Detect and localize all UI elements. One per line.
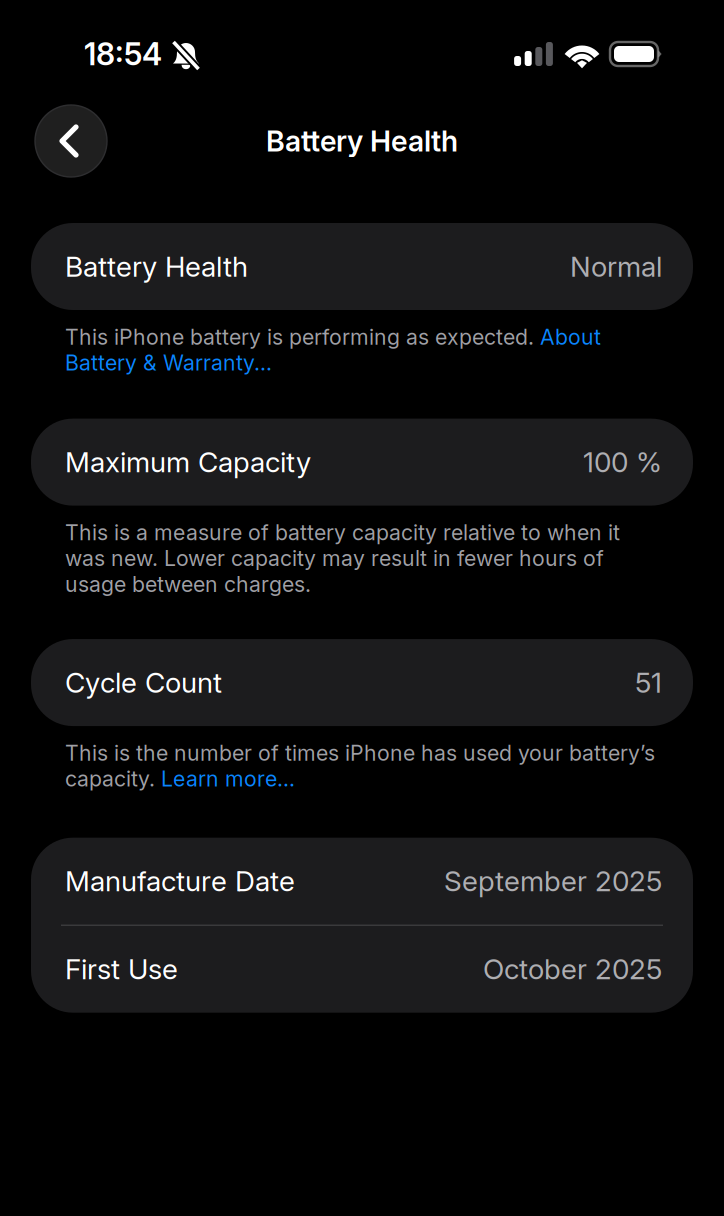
button[interactable]: Maximum Capacity — [31, 419, 693, 506]
staticText: Battery Health — [266, 124, 458, 158]
staticText: Manufacture Date — [65, 864, 295, 898]
staticText: 51 — [635, 666, 662, 699]
staticText: 100 % — [583, 445, 662, 479]
staticText: This is a measure of battery capacity re… — [65, 520, 620, 597]
button[interactable]: First Use — [31, 926, 693, 1013]
staticText: This is the number of times iPhone has u… — [65, 740, 655, 792]
staticText: 18:54 — [84, 35, 162, 72]
staticText: Battery Health — [65, 250, 248, 283]
button[interactable]: Cycle Count — [31, 639, 693, 726]
staticText: Maximum Capacity — [65, 445, 311, 479]
button[interactable]: Battery Health — [31, 223, 693, 310]
staticText: First Use — [65, 952, 178, 986]
staticText: Cycle Count — [65, 666, 222, 699]
button[interactable]: Back — [35, 105, 107, 177]
button[interactable]: Manufacture Date — [31, 838, 693, 925]
staticText: October 2025 — [483, 952, 662, 986]
staticText: September 2025 — [444, 864, 662, 898]
staticText: This iPhone battery is performing as exp… — [65, 324, 601, 376]
staticText: Normal — [570, 250, 662, 283]
